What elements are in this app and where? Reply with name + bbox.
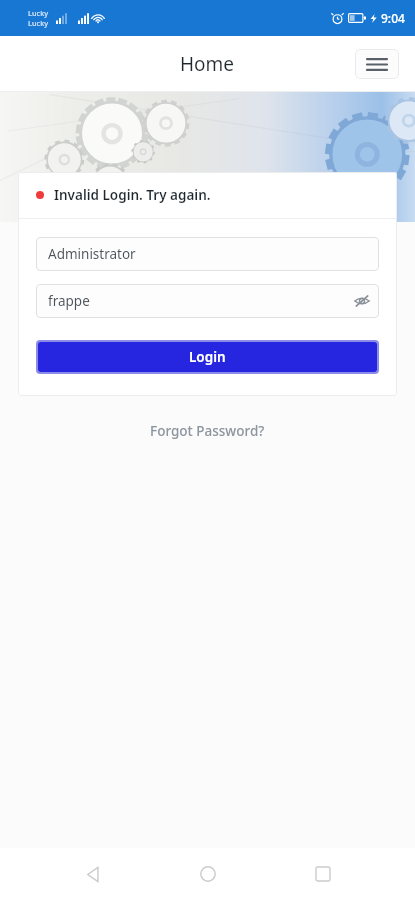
staticText: Home: [180, 51, 235, 77]
staticText: Login: [189, 348, 226, 366]
button[interactable]: Administrator: [36, 237, 379, 271]
button[interactable]: Show password: [345, 284, 379, 318]
staticText: Forgot Password?: [150, 422, 265, 440]
button[interactable]: Home: [184, 850, 232, 898]
button[interactable]: Open navigation menu: [355, 49, 399, 79]
button[interactable]: Forgot Password?: [0, 422, 415, 440]
staticText: Lucky: [28, 18, 48, 28]
button[interactable]: Recent apps: [299, 850, 347, 898]
staticText: Administrator: [48, 245, 136, 263]
button[interactable]: Login: [38, 342, 377, 372]
staticText: frappe: [48, 292, 90, 310]
button[interactable]: frappe: [36, 284, 379, 318]
staticText: 9:04: [381, 10, 405, 26]
staticText: Invalid Login. Try again.: [54, 186, 211, 204]
button[interactable]: Back: [68, 850, 116, 898]
staticText: Lucky: [28, 8, 48, 18]
